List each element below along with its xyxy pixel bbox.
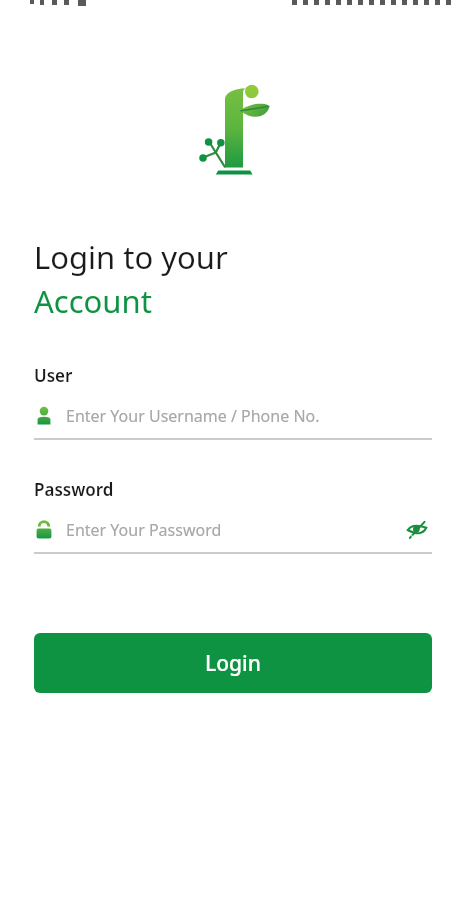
staticText: User bbox=[34, 364, 73, 387]
button[interactable]: Enter Your Password bbox=[34, 515, 432, 545]
button[interactable]: Enter Your Username / Phone No. bbox=[34, 401, 432, 431]
staticText: Login bbox=[205, 649, 261, 678]
staticText: Enter Your Password bbox=[66, 519, 222, 541]
staticText: Enter Your Username / Phone No. bbox=[66, 405, 320, 427]
button[interactable]: Login bbox=[34, 633, 432, 693]
button[interactable]: Show password bbox=[402, 515, 432, 545]
staticText: Login to your bbox=[34, 236, 228, 278]
staticText: Account bbox=[34, 280, 152, 322]
staticText: Password bbox=[34, 478, 114, 501]
